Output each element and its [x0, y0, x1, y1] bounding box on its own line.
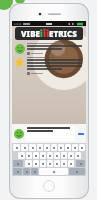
button[interactable]: Numbers: [13, 168, 22, 175]
button[interactable]: Key: [75, 152, 81, 159]
button[interactable]: Backspace: [76, 160, 85, 167]
button[interactable]: Key: [65, 144, 71, 151]
staticText: ETRICS: [49, 28, 77, 39]
button[interactable]: VIBE: [15, 27, 83, 40]
button[interactable]: Key: [47, 152, 53, 159]
button[interactable]: Key: [40, 152, 46, 159]
button[interactable]: Key: [18, 152, 25, 159]
button[interactable]: Key: [47, 160, 53, 167]
button[interactable]: Home: [43, 180, 55, 192]
button[interactable]: Key: [58, 144, 64, 151]
button[interactable]: Space: [39, 168, 68, 175]
button[interactable]: Key: [61, 152, 67, 159]
button[interactable]: Key: [26, 152, 32, 159]
button[interactable]: Key: [51, 144, 57, 151]
button[interactable]: Key: [21, 144, 28, 151]
button[interactable]: Return: [69, 168, 85, 175]
button[interactable]: Emoji: [23, 168, 30, 175]
button[interactable]: Key: [61, 160, 67, 167]
button[interactable]: Key: [40, 160, 46, 167]
button[interactable]: [14, 43, 84, 55]
button[interactable]: Key: [33, 152, 39, 159]
button[interactable]: Dictate: [31, 168, 38, 175]
button[interactable]: Key: [54, 152, 60, 159]
button[interactable]: [27, 127, 74, 140]
button[interactable]: Key: [68, 160, 74, 167]
button[interactable]: Key: [44, 144, 50, 151]
button[interactable]: Key: [68, 152, 74, 159]
button[interactable]: Key: [72, 144, 78, 151]
button[interactable]: [14, 57, 84, 75]
button[interactable]: Shift: [13, 160, 23, 167]
button[interactable]: Key: [25, 160, 32, 167]
button[interactable]: Key: [79, 144, 85, 151]
button[interactable]: Key: [29, 144, 36, 151]
button[interactable]: Key: [54, 160, 60, 167]
staticText: VIBE: [21, 28, 40, 39]
button[interactable]: Key: [37, 144, 43, 151]
button[interactable]: Key: [33, 160, 39, 167]
button[interactable]: Key: [13, 144, 20, 151]
button[interactable]: [77, 130, 84, 138]
